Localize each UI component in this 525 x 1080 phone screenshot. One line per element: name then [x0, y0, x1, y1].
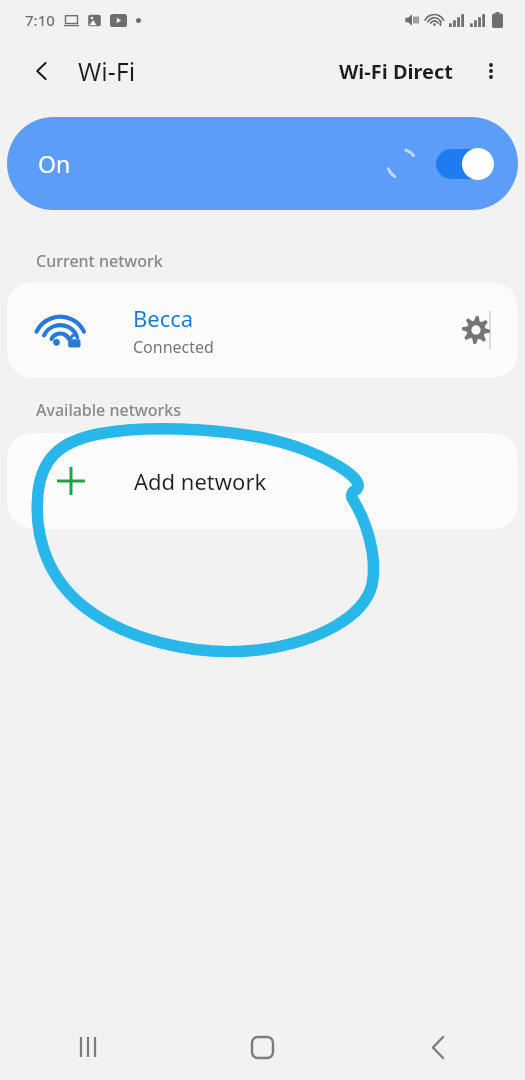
staticText: Available networks — [36, 399, 181, 421]
staticText: Connected — [133, 336, 214, 358]
staticText: On — [38, 148, 71, 179]
button[interactable]: Back — [350, 1014, 525, 1080]
button[interactable]: Home — [175, 1014, 350, 1080]
button[interactable]: Wi-Fi Direct — [335, 52, 457, 91]
staticText: Current network — [36, 250, 163, 272]
button[interactable]: Becca — [7, 282, 518, 378]
staticText: Add network — [134, 466, 267, 496]
button[interactable]: Add network — [7, 433, 518, 529]
button[interactable]: Network settings — [448, 302, 504, 358]
staticText: 7:10 — [25, 10, 55, 30]
button[interactable]: On — [7, 117, 518, 210]
button[interactable]: Back — [20, 49, 64, 93]
button[interactable]: More options — [469, 49, 513, 93]
staticText: Wi-Fi — [78, 54, 136, 88]
staticText: Becca — [133, 303, 194, 333]
button[interactable]: Wi-Fi on — [436, 148, 494, 180]
button[interactable]: Recent apps — [0, 1014, 175, 1080]
